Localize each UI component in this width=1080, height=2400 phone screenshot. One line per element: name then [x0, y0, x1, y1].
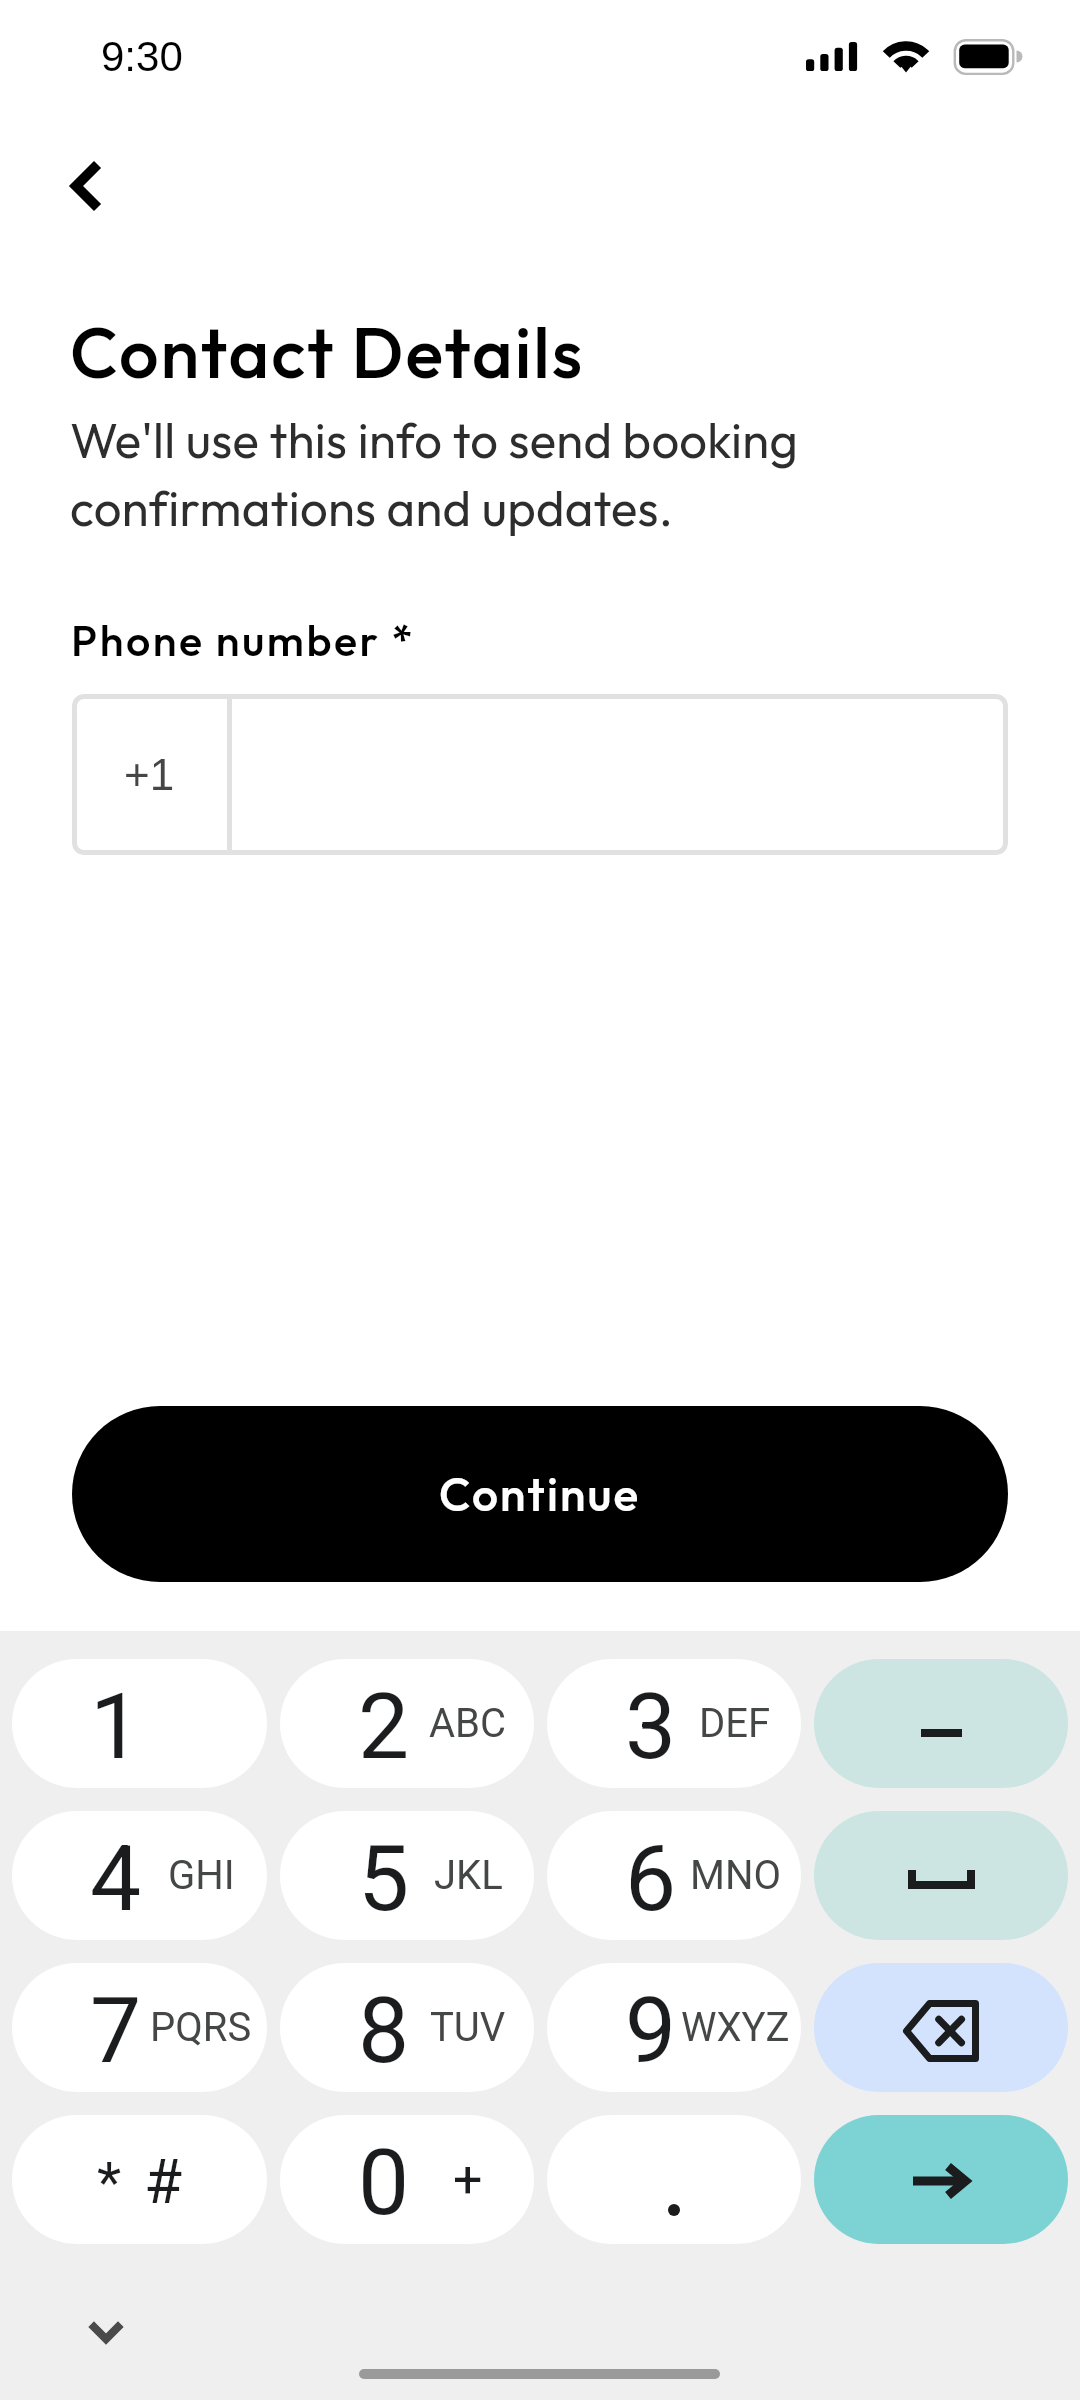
button[interactable]: 5	[280, 1811, 534, 1940]
staticText: 8	[358, 1978, 410, 2085]
staticText: 9	[625, 1978, 677, 2085]
button[interactable]: 0	[280, 2115, 534, 2244]
staticText: 4	[90, 1826, 142, 1933]
staticText: 6	[625, 1826, 677, 1933]
staticText: TUV	[430, 2004, 506, 2051]
staticText: DEF	[699, 1700, 771, 1747]
button[interactable]: Back	[46, 147, 124, 225]
button[interactable]: 9	[547, 1963, 801, 2092]
button[interactable]: Enter	[814, 2115, 1068, 2244]
staticText: We'll use this info to send booking conf…	[70, 409, 799, 539]
staticText: WXYZ	[681, 2004, 790, 2051]
staticText: 9:30	[101, 33, 183, 80]
button[interactable]: 3	[547, 1659, 801, 1788]
button[interactable]: Dash	[814, 1659, 1068, 1788]
button[interactable]: Continue	[72, 1406, 1008, 1582]
button[interactable]: Hide keyboard	[72, 2299, 140, 2367]
button[interactable]: 8	[280, 1963, 534, 2092]
button[interactable]: 2	[280, 1659, 534, 1788]
staticText: Phone number *	[71, 613, 416, 667]
staticText: 0	[358, 2130, 410, 2237]
staticText: 3	[625, 1674, 677, 1781]
staticText: 5	[358, 1826, 410, 1933]
button[interactable]: Dot	[547, 2115, 801, 2244]
staticText: 7	[90, 1978, 142, 2085]
staticText: Continue	[439, 1465, 641, 1523]
staticText: *	[97, 2150, 122, 2216]
button[interactable]: 4	[12, 1811, 267, 1940]
staticText: 2	[358, 1674, 410, 1781]
staticText: PQRS	[150, 2004, 252, 2051]
staticText: MNO	[690, 1852, 781, 1899]
button[interactable]: 1	[12, 1659, 267, 1788]
button[interactable]: 7	[12, 1963, 267, 2092]
staticText: +	[453, 2149, 483, 2210]
staticText: JKL	[434, 1852, 503, 1899]
staticText: ABC	[429, 1700, 507, 1747]
button[interactable]: 6	[547, 1811, 801, 1940]
button[interactable]: Backspace	[814, 1963, 1068, 2092]
button[interactable]: +1	[72, 694, 1008, 855]
staticText: 1	[90, 1674, 142, 1781]
staticText: GHI	[168, 1852, 235, 1899]
button[interactable]: *	[12, 2115, 267, 2244]
button[interactable]: Space	[814, 1811, 1068, 1940]
staticText: Contact Details	[70, 308, 585, 396]
staticText: +1	[124, 750, 175, 799]
staticText: #	[144, 2145, 183, 2218]
